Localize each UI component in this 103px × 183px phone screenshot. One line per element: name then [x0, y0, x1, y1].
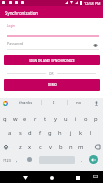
button[interactable]: e: [20, 113, 30, 125]
staticText: z: [19, 143, 22, 151]
staticText: k: [79, 129, 83, 137]
staticText: SIGN IN AND SYNCHRONIZE: [29, 58, 75, 63]
staticText: j: [70, 129, 72, 137]
staticText: c: [39, 143, 42, 151]
staticText: l: [90, 129, 92, 137]
staticText: h: [58, 129, 62, 137]
staticText: ,: [16, 157, 18, 164]
button[interactable]: DEMO: [4, 79, 100, 91]
staticText: Login: [7, 24, 15, 28]
staticText: q: [3, 115, 7, 123]
staticText: o: [84, 115, 88, 123]
staticText: w: [13, 115, 18, 123]
staticText: p: [94, 115, 98, 123]
button[interactable]: Switch keyboard: [91, 172, 100, 181]
staticText: OR: [49, 72, 54, 76]
button[interactable]: m: [76, 141, 86, 153]
button[interactable]: thanks: [10, 98, 41, 108]
button[interactable]: ,: [13, 153, 21, 167]
staticText: ?123: [3, 158, 11, 163]
button[interactable]: Show password: [91, 41, 99, 49]
staticText: DEMO: [48, 83, 57, 87]
staticText: g: [48, 129, 52, 137]
button[interactable]: no: [67, 98, 91, 108]
button[interactable]: j: [66, 127, 76, 139]
button[interactable]: w: [10, 113, 20, 125]
button[interactable]: Login: [0, 20, 103, 38]
button[interactable]: Shift: [2, 143, 10, 151]
staticText: Synchronization: [5, 10, 39, 16]
staticText: m: [78, 143, 84, 151]
staticText: thanks: [19, 100, 33, 106]
staticText: I: [53, 100, 55, 106]
staticText: d: [28, 129, 32, 137]
button[interactable]: x: [25, 141, 35, 153]
button[interactable]: Voice input: [94, 101, 99, 106]
button[interactable]: Home: [46, 172, 57, 183]
staticText: no: [76, 100, 82, 106]
staticText: s: [19, 129, 22, 137]
button[interactable]: n: [66, 141, 76, 153]
staticText: i: [75, 115, 77, 123]
staticText: a: [8, 129, 12, 137]
button[interactable]: Hide keyboard: [20, 172, 31, 183]
button[interactable]: p: [91, 113, 101, 125]
button[interactable]: y: [50, 113, 60, 125]
button[interactable]: .: [78, 153, 86, 167]
button[interactable]: z: [15, 141, 25, 153]
button[interactable]: t: [40, 113, 50, 125]
button[interactable]: s: [15, 127, 25, 139]
staticText: .: [81, 157, 83, 163]
button[interactable]: Enter: [89, 155, 98, 164]
staticText: t: [44, 115, 47, 123]
button[interactable]: v: [45, 141, 55, 153]
staticText: y: [54, 115, 57, 123]
button[interactable]: Recent apps: [72, 172, 83, 183]
button[interactable]: u: [61, 113, 71, 125]
staticText: v: [49, 143, 52, 151]
staticText: 12:58 PM: [84, 1, 101, 6]
staticText: e: [23, 115, 27, 123]
button[interactable]: Password: [0, 38, 103, 50]
button[interactable]: ?123: [1, 153, 12, 167]
staticText: r: [34, 115, 37, 123]
button[interactable]: a: [5, 127, 15, 139]
button[interactable]: k: [76, 127, 86, 139]
button[interactable]: b: [56, 141, 66, 153]
button[interactable]: Emoji: [27, 157, 32, 162]
button[interactable]: SIGN IN AND SYNCHRONIZE: [4, 55, 100, 65]
staticText: b: [59, 143, 63, 151]
staticText: f: [39, 129, 41, 137]
button[interactable]: i: [71, 113, 81, 125]
button[interactable]: l: [86, 127, 96, 139]
button[interactable]: c: [35, 141, 45, 153]
staticText: x: [28, 143, 32, 151]
button[interactable]: r: [30, 113, 40, 125]
button[interactable]: I: [41, 98, 67, 108]
button[interactable]: q: [0, 113, 10, 125]
button[interactable]: d: [25, 127, 35, 139]
button[interactable]: f: [35, 127, 45, 139]
button[interactable]: g: [45, 127, 55, 139]
button[interactable]: h: [55, 127, 65, 139]
button[interactable]: Backspace: [93, 143, 101, 151]
button[interactable]: o: [81, 113, 91, 125]
staticText: n: [69, 143, 73, 151]
staticText: u: [64, 115, 68, 123]
staticText: Password: [7, 41, 24, 46]
